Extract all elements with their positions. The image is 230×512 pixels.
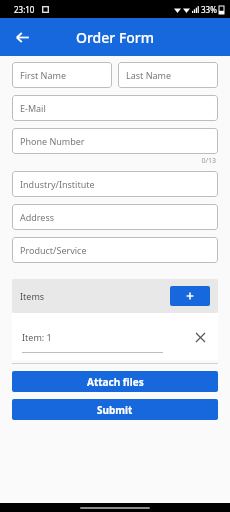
- button[interactable]: Attach files: [12, 371, 218, 392]
- staticText: Phone Number: [20, 135, 85, 147]
- button[interactable]: E-Mail: [12, 95, 218, 121]
- button[interactable]: Last Name: [118, 62, 218, 88]
- staticText: Submit: [97, 403, 133, 417]
- staticText: E-Mail: [20, 102, 46, 114]
- button[interactable]: Submit: [12, 399, 218, 420]
- staticText: Attach files: [87, 375, 144, 389]
- button[interactable]: Address: [12, 204, 218, 230]
- button[interactable]: Phone Number: [12, 128, 218, 154]
- staticText: Industry/Institute: [20, 178, 95, 190]
- button[interactable]: Industry/Institute: [12, 171, 218, 197]
- staticText: Order Form: [76, 28, 155, 47]
- staticText: Items: [20, 290, 45, 302]
- staticText: Item: 1: [22, 331, 52, 343]
- staticText: First Name: [20, 69, 66, 81]
- button[interactable]: Remove item: [190, 327, 210, 347]
- button[interactable]: Back: [8, 23, 36, 51]
- button[interactable]: Product/Service: [12, 237, 218, 263]
- staticText: 0/13: [12, 156, 216, 166]
- button[interactable]: Add item: [170, 286, 210, 306]
- staticText: 23:10: [14, 4, 35, 15]
- staticText: 33%: [201, 4, 217, 15]
- button[interactable]: First Name: [12, 62, 112, 88]
- staticText: Last Name: [126, 69, 172, 81]
- staticText: Address: [20, 211, 55, 223]
- staticText: Product/Service: [20, 244, 87, 256]
